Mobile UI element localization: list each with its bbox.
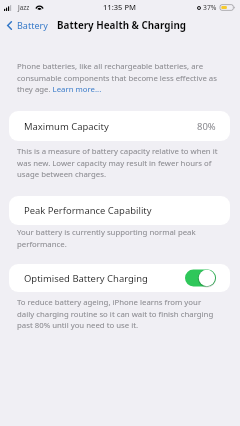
staticText: 37% [203, 3, 217, 12]
staticText: Battery [17, 19, 48, 31]
staticText: Your battery is currently supporting nor… [17, 227, 218, 249]
staticText: This is a measure of battery capacity re… [17, 146, 218, 179]
staticText: Maximum Capacity [24, 120, 109, 133]
staticText: 80% [197, 120, 216, 133]
button[interactable]: Optimised Battery Charging toggle [185, 269, 216, 287]
staticText: 11:35 PM [103, 2, 137, 12]
staticText: To reduce battery ageing, iPhone learns … [17, 297, 218, 330]
staticText: Battery Health & Charging [57, 19, 186, 32]
staticText: Peak Performance Capability [24, 204, 152, 217]
staticText: Jazz [18, 3, 30, 12]
staticText: Optimised Battery Charging [24, 272, 148, 285]
button[interactable]: Optimised Battery Charging [9, 264, 230, 292]
button[interactable]: Back to Battery [0, 16, 51, 34]
button[interactable]: Maximum Capacity [9, 111, 230, 141]
staticText: Phone batteries, like all rechargeable b… [17, 61, 218, 94]
button[interactable]: Peak Performance Capability [9, 196, 230, 225]
